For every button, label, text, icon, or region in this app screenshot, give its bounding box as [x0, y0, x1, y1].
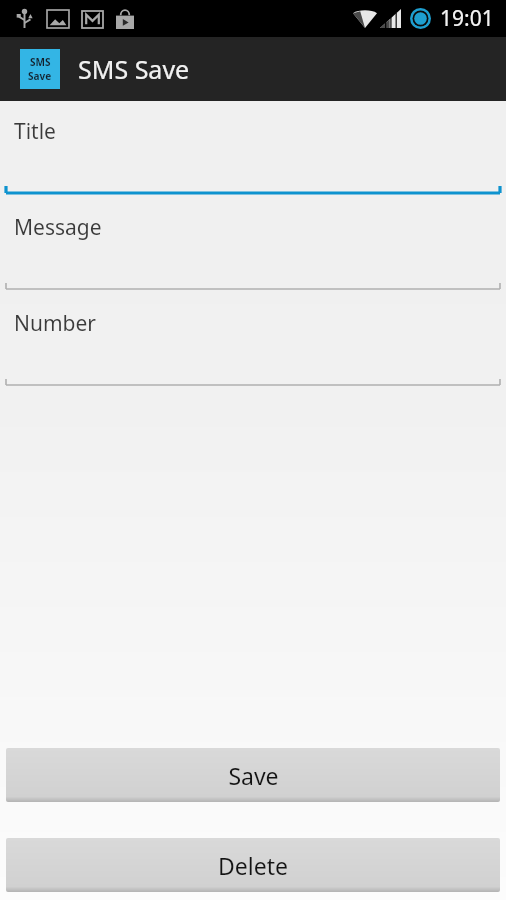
button[interactable]: Delete	[6, 838, 500, 892]
staticText: SMS	[30, 55, 51, 69]
staticText: Delete	[218, 850, 288, 881]
staticText: Message	[14, 213, 102, 242]
staticText: 19:01	[440, 4, 494, 33]
button[interactable]: Message	[0, 197, 506, 293]
staticText: Save	[28, 69, 52, 83]
button[interactable]: Title	[0, 101, 506, 197]
button[interactable]: Number	[0, 293, 506, 389]
staticText: Title	[14, 117, 56, 146]
button[interactable]: Save	[6, 748, 500, 802]
staticText: Number	[14, 309, 97, 338]
staticText: Save	[228, 760, 279, 791]
staticText: SMS Save	[78, 52, 190, 86]
